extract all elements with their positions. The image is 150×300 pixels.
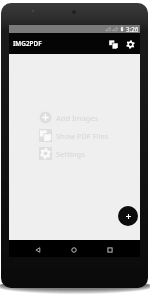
button[interactable]: Recents: [104, 244, 116, 256]
staticText: Settings: [56, 149, 85, 159]
button[interactable]: Show PDF Files: [105, 36, 121, 52]
button[interactable]: Add Images: [39, 111, 99, 124]
button[interactable]: Add: [118, 206, 138, 226]
button[interactable]: Show PDF Files: [39, 129, 109, 142]
button[interactable]: Home: [68, 244, 80, 256]
button[interactable]: Back: [32, 244, 44, 256]
staticText: 3:26: [126, 25, 139, 33]
button[interactable]: Settings: [122, 36, 138, 52]
staticText: Add Images: [56, 113, 99, 123]
staticText: IMG2PDF: [13, 39, 42, 48]
button[interactable]: Settings: [39, 147, 85, 160]
staticText: Show PDF Files: [56, 131, 109, 141]
